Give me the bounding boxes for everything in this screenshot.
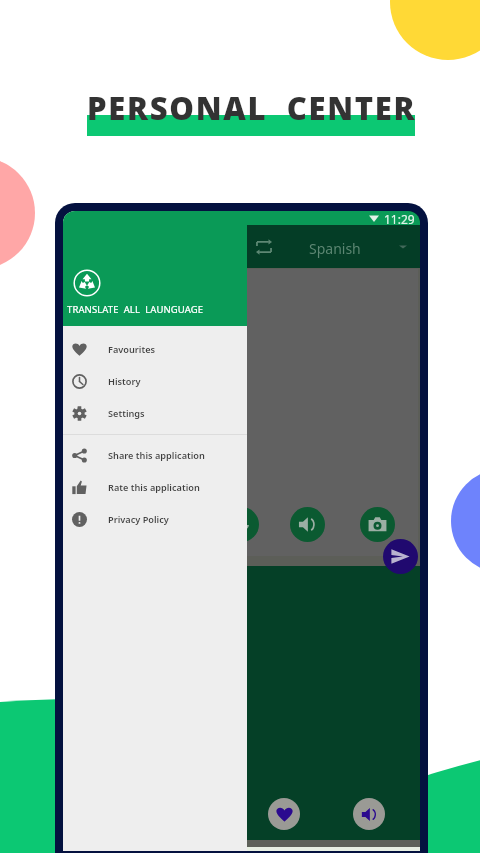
staticText: 11:29 [384,211,415,225]
button[interactable]: Send [383,539,418,574]
button[interactable]: History [63,365,247,397]
button[interactable]: Settings [63,397,247,429]
staticText: Rate this application [108,481,200,494]
staticText: Share this application [108,449,205,462]
button[interactable]: Rate this application [63,471,247,503]
staticText: PERSONAL CENTER [87,87,417,129]
button[interactable]: Speak [290,507,325,542]
button[interactable]: Share this application [63,439,247,471]
staticText: Settings [108,407,145,420]
button[interactable]: Favourite [268,798,300,830]
button[interactable]: Favourites [63,333,247,365]
staticText: TRANSLATE ALL LAUNGUAGE [67,303,204,316]
button[interactable]: Swap languages [252,235,276,259]
button[interactable]: Camera [360,507,395,542]
button[interactable]: Mic [224,507,259,542]
staticText: Spanish [309,239,361,258]
staticText: History [108,375,141,388]
button[interactable]: Speak [353,798,385,830]
staticText: Privacy Policy [108,513,169,526]
button[interactable]: Privacy Policy [63,503,247,535]
staticText: Favourites [108,343,156,356]
